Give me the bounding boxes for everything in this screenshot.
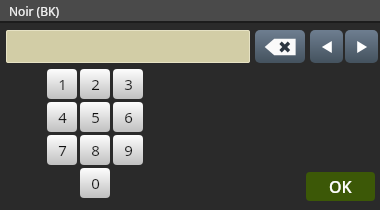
button[interactable]: OK	[306, 172, 375, 201]
button[interactable]: 4	[47, 102, 77, 132]
button[interactable]: Move cursor right	[345, 30, 378, 63]
button[interactable]	[6, 30, 250, 63]
staticText: 8	[91, 140, 100, 160]
button[interactable]: 0	[80, 168, 110, 198]
staticText: 2	[91, 74, 100, 94]
button[interactable]: 3	[113, 69, 143, 99]
staticText: 3	[124, 74, 133, 94]
staticText: 7	[58, 140, 67, 160]
button[interactable]: 8	[80, 135, 110, 165]
button[interactable]: 6	[113, 102, 143, 132]
button[interactable]: Move cursor left	[310, 30, 343, 63]
button[interactable]: 2	[80, 69, 110, 99]
button[interactable]: 7	[47, 135, 77, 165]
button[interactable]: 1	[47, 69, 77, 99]
button[interactable]: 9	[113, 135, 143, 165]
staticText: 4	[58, 107, 67, 127]
staticText: 0	[91, 173, 100, 193]
staticText: 5	[91, 107, 100, 127]
staticText: 6	[124, 107, 133, 127]
staticText: OK	[329, 176, 352, 198]
staticText: 1	[58, 74, 67, 94]
button[interactable]: 5	[80, 102, 110, 132]
staticText: 9	[124, 140, 133, 160]
button[interactable]: Backspace	[255, 30, 305, 63]
staticText: Noir (BK)	[9, 3, 59, 19]
